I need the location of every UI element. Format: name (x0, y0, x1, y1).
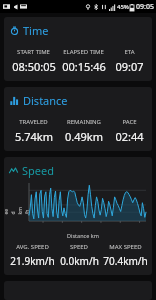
staticText: REMAINING (67, 118, 101, 126)
staticText: Distance (23, 93, 68, 108)
staticText: TRAVELED (19, 118, 48, 126)
staticText: 21.9km/h (10, 254, 55, 268)
button[interactable]: Time (4, 17, 152, 81)
staticText: 0.49km (65, 129, 103, 144)
staticText: SPEED (70, 243, 88, 251)
staticText: Speed (22, 163, 54, 178)
staticText: 70.4km/h (103, 254, 148, 268)
staticText: Distance km (67, 232, 99, 239)
other: Screenshot (3, 3, 10, 10)
staticText: START TIME (17, 48, 50, 56)
staticText: Time (23, 23, 49, 38)
staticText: AVG. SPEED (16, 243, 49, 251)
button[interactable]: Distance (4, 87, 152, 151)
staticText: PACE (122, 118, 137, 126)
staticText: 0.0km/h (60, 254, 99, 268)
staticText: MAX SPEED (109, 243, 142, 251)
staticText: Speed km/h (4, 206, 30, 214)
staticText: 09:05 (136, 2, 154, 12)
staticText: ELAPSED TIME (63, 48, 104, 56)
staticText: 45% (117, 3, 129, 11)
staticText: 00:15:46 (62, 59, 106, 74)
staticText: 5.74km (15, 129, 53, 144)
staticText: ETA (124, 48, 135, 56)
staticText: 08:50:05 (12, 59, 56, 74)
staticText: 09:07 (115, 59, 144, 74)
staticText: 02:44 (115, 129, 144, 144)
button[interactable]: Speed (4, 157, 152, 275)
